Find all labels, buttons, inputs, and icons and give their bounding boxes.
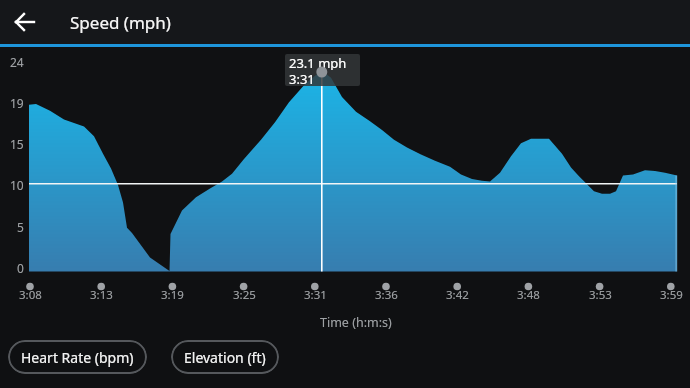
button[interactable] <box>0 0 50 44</box>
staticText: 3:59 <box>660 287 683 302</box>
staticText: 3:08 <box>19 287 42 302</box>
staticText: Time (h:m:s) <box>320 314 392 331</box>
staticText: 3:53 <box>589 287 612 302</box>
staticText: 3:31 <box>304 287 327 302</box>
staticText: 3:48 <box>517 287 540 302</box>
staticText: Elevation (ft) <box>184 348 266 367</box>
staticText: 3:19 <box>161 287 184 302</box>
staticText: 0 <box>17 260 24 276</box>
staticText: 10 <box>10 177 24 193</box>
staticText: Heart Rate (bpm) <box>21 348 134 367</box>
staticText: 15 <box>10 136 24 152</box>
staticText: 3:13 <box>90 287 113 302</box>
staticText: 3:25 <box>233 287 256 302</box>
staticText: 5 <box>17 219 24 235</box>
staticText: 3:42 <box>446 287 469 302</box>
button[interactable]: Heart Rate (bpm) <box>8 340 147 374</box>
button[interactable]: Elevation (ft) <box>171 340 279 374</box>
staticText: 19 <box>10 95 24 111</box>
staticText: 3:36 <box>375 287 398 302</box>
staticText: Speed (mph) <box>70 11 171 34</box>
staticText: 3:31 <box>289 70 315 86</box>
staticText: 23.1 mph <box>289 54 347 70</box>
staticText: 24 <box>10 54 24 70</box>
